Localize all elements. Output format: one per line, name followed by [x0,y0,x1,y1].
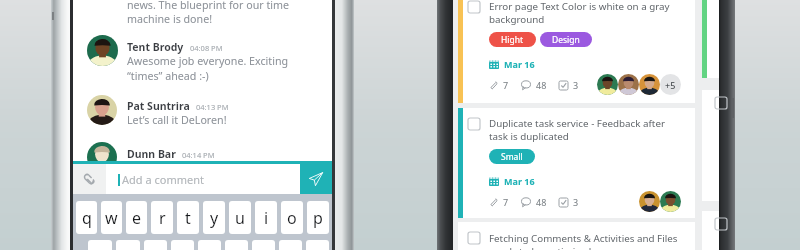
button[interactable]: p [307,201,329,234]
staticText: Add a comment [122,172,204,187]
button[interactable]: y [203,201,225,234]
button[interactable]: k [279,240,302,250]
staticText: 3 [573,79,579,91]
staticText: Duplicate task service - Feedback after … [489,117,665,143]
staticText: Mar 16 [504,58,535,70]
staticText: news. The blueprint for our time machine… [127,0,290,26]
staticText: Small [501,151,523,163]
staticText: 04:13 PM [196,102,229,112]
staticText: p [313,207,323,229]
staticText: 7 [503,79,509,91]
staticText: Hight [501,34,524,46]
button[interactable]: q [76,201,97,234]
button[interactable]: Attach file [73,164,106,194]
button[interactable]: j [252,240,275,250]
staticText: o [287,207,297,229]
staticText: Fetching Comments & Activities and Files… [489,232,678,250]
staticText: Dunn Bar [127,147,176,161]
button[interactable]: w [101,201,122,234]
staticText: 3 [573,196,579,208]
staticText: 48 [536,79,547,91]
staticText: 04:14 PM [182,150,215,160]
button[interactable]: Duplicate task service - Feedback after … [458,108,695,218]
button[interactable]: g [198,240,221,250]
button[interactable]: r [151,201,173,234]
button[interactable]: Send [300,164,332,194]
staticText: y [210,207,219,229]
staticText: Design [552,34,580,46]
staticText: Awesome job everyone. Exciting “times” a… [127,54,289,83]
staticText: Let’s call it DeLoren! [127,113,227,128]
button[interactable]: l [306,240,329,250]
button[interactable]: h [225,240,248,250]
button[interactable]: d [144,240,167,250]
staticText: Error page Text Color is white on a gray… [489,0,670,26]
button[interactable]: Hight [489,32,536,47]
staticText: r [159,207,166,229]
staticText: Pat Suntrira [127,99,190,113]
button[interactable]: o [281,201,303,234]
staticText: t [185,207,191,229]
button[interactable]: a [88,240,112,250]
staticText: w [105,207,118,229]
staticText: 7 [503,196,509,208]
button[interactable]: f [171,240,194,250]
staticText: Mar 16 [504,175,535,187]
staticText: i [264,207,269,229]
button[interactable]: Error page Text Color is white on a gray… [458,0,695,103]
button[interactable]: Add a comment [106,164,300,194]
button[interactable]: s [116,240,140,250]
button[interactable]: u [229,201,251,234]
button[interactable]: Fetching Comments & Activities and Files… [458,222,695,250]
staticText: Tent Brody [127,40,184,54]
button[interactable]: i [255,201,277,234]
button[interactable]: Design [540,32,592,47]
staticText: u [235,207,245,229]
staticText: 48 [536,196,547,208]
staticText: +5 [665,79,676,91]
staticText: 04:08 PM [190,43,223,53]
staticText: e [132,207,142,229]
button[interactable]: Small [489,149,535,164]
button[interactable]: t [177,201,199,234]
staticText: q [82,207,92,229]
button[interactable]: e [126,201,147,234]
